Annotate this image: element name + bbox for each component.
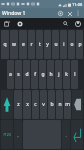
button[interactable]: v — [40, 90, 47, 119]
button[interactable]: l — [71, 60, 78, 89]
staticText: u — [54, 41, 58, 48]
button[interactable]: e — [19, 30, 27, 59]
button[interactable]: i — [60, 30, 67, 59]
button[interactable]: x — [23, 90, 31, 119]
button[interactable]: d — [23, 60, 30, 89]
staticText: j — [58, 71, 60, 78]
button[interactable]: z — [14, 90, 22, 119]
button[interactable]: p — [76, 30, 83, 59]
button[interactable]: f — [31, 60, 38, 89]
staticText: ?123 — [3, 132, 11, 137]
button[interactable]: w — [10, 30, 18, 59]
staticText: y — [46, 41, 49, 48]
button[interactable]: o — [68, 30, 75, 59]
button[interactable]: h — [47, 60, 54, 89]
button[interactable]: b — [48, 90, 55, 119]
staticText: f — [34, 71, 36, 78]
button[interactable]: m — [64, 90, 71, 119]
staticText: g — [41, 71, 45, 78]
staticText: r — [30, 41, 33, 48]
staticText: . — [65, 132, 67, 138]
staticText: l — [74, 71, 76, 78]
staticText: 11:08 — [72, 2, 83, 7]
staticText: i — [63, 41, 65, 48]
button[interactable]: New window — [56, 9, 65, 18]
staticText: p — [78, 41, 82, 48]
staticText: s — [17, 71, 20, 78]
button[interactable]: Backspace — [72, 90, 83, 119]
button[interactable]: n — [56, 90, 63, 119]
staticText: w — [12, 41, 16, 48]
button[interactable]: More options — [74, 9, 82, 17]
button[interactable]: Enter — [71, 120, 83, 149]
staticText: b — [50, 101, 54, 108]
button[interactable]: y — [44, 30, 51, 59]
button[interactable]: j — [55, 60, 62, 89]
button[interactable]: ?123 — [1, 120, 13, 149]
staticText: o — [70, 41, 74, 48]
staticText: k — [65, 71, 68, 78]
button[interactable]: , — [14, 120, 22, 149]
button[interactable]: Search — [61, 19, 70, 28]
staticText: d — [25, 71, 29, 78]
button[interactable]: Keyboard settings — [15, 19, 24, 28]
staticText: Window 1 — [2, 10, 56, 17]
staticText: q — [3, 41, 7, 48]
staticText: e — [22, 41, 25, 48]
button[interactable]: k — [63, 60, 70, 89]
staticText: a — [9, 71, 12, 78]
staticText: x — [26, 101, 29, 108]
staticText: c — [34, 101, 37, 108]
button[interactable]: Shift — [1, 90, 13, 119]
button[interactable]: u — [52, 30, 59, 59]
button[interactable]: Close window — [65, 9, 74, 18]
button[interactable]: g — [39, 60, 46, 89]
staticText: v — [42, 101, 45, 108]
button[interactable]: Clipboard — [2, 19, 11, 28]
staticText: , — [17, 132, 19, 138]
button[interactable]: q — [1, 30, 9, 59]
button[interactable]: r — [28, 30, 35, 59]
button[interactable]: a — [7, 60, 14, 89]
staticText: m — [65, 101, 70, 108]
staticText: n — [58, 101, 62, 108]
staticText: z — [17, 101, 20, 108]
staticText: h — [49, 71, 53, 78]
button[interactable]: c — [32, 90, 39, 119]
button[interactable]: Themes — [73, 19, 82, 28]
button[interactable]: t — [36, 30, 43, 59]
button[interactable]: s — [15, 60, 22, 89]
staticText: t — [39, 41, 41, 48]
